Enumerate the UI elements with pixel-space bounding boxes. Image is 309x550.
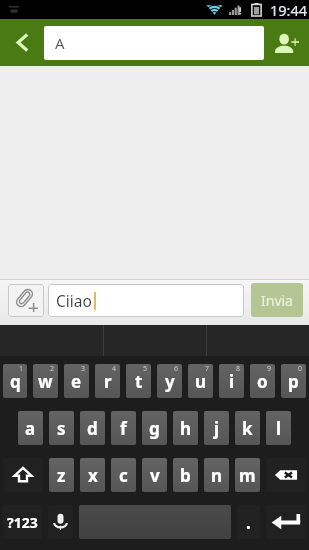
staticText: y — [165, 370, 175, 393]
button[interactable]: p — [281, 364, 306, 398]
staticText: l — [276, 417, 282, 440]
staticText: z — [57, 464, 66, 487]
button[interactable]: Add contact — [264, 19, 309, 66]
staticText: b — [180, 464, 191, 487]
staticText: Invia — [261, 291, 293, 310]
button[interactable]: k — [235, 411, 260, 445]
staticText: t — [135, 370, 143, 393]
button[interactable]: s — [49, 411, 74, 445]
button[interactable]: x — [80, 458, 105, 492]
staticText: 5 — [143, 364, 148, 374]
staticText: m — [239, 464, 256, 487]
staticText: u — [195, 370, 207, 393]
staticText: 2 — [50, 364, 55, 374]
staticText: f — [120, 417, 127, 440]
staticText: 6 — [174, 364, 179, 374]
staticText: d — [87, 417, 98, 440]
button[interactable]: A — [44, 26, 264, 60]
button[interactable]: Invia — [251, 283, 303, 317]
staticText: o — [257, 370, 268, 393]
button[interactable]: . — [237, 505, 260, 539]
button[interactable]: g — [142, 411, 167, 445]
button[interactable]: Backspace — [266, 458, 306, 492]
button[interactable]: f — [111, 411, 136, 445]
staticText: 7 — [205, 364, 210, 374]
button[interactable]: v — [142, 458, 167, 492]
button[interactable]: z — [49, 458, 74, 492]
staticText: 3 — [81, 364, 86, 374]
button[interactable]: h — [173, 411, 198, 445]
button[interactable]: y — [157, 364, 182, 398]
staticText: r — [104, 370, 112, 393]
staticText: . — [246, 511, 251, 534]
button[interactable]: n — [204, 458, 229, 492]
staticText: 19:44 — [270, 0, 308, 19]
button[interactable]: Back — [0, 19, 44, 66]
button[interactable]: Enter — [266, 505, 306, 539]
button[interactable]: b — [173, 458, 198, 492]
button[interactable]: m — [235, 458, 260, 492]
button[interactable]: e — [64, 364, 89, 398]
button[interactable]: q — [3, 364, 27, 398]
staticText: s — [57, 417, 66, 440]
staticText: A — [55, 33, 65, 53]
staticText: 9 — [267, 364, 272, 374]
staticText: g — [149, 417, 160, 440]
button[interactable]: c — [111, 458, 136, 492]
staticText: x — [88, 464, 98, 487]
staticText: w — [38, 370, 53, 393]
staticText: ?123 — [7, 513, 38, 532]
button[interactable]: r — [95, 364, 120, 398]
staticText: v — [150, 464, 160, 487]
staticText: j — [214, 417, 220, 440]
button[interactable]: ?123 — [3, 505, 42, 539]
staticText: a — [25, 417, 36, 440]
staticText: 8 — [236, 364, 241, 374]
button[interactable]: Shift — [3, 458, 43, 492]
staticText: 1 — [19, 364, 24, 374]
button[interactable]: t — [126, 364, 151, 398]
button[interactable]: j — [204, 411, 229, 445]
button[interactable]: w — [33, 364, 58, 398]
button[interactable]: d — [80, 411, 105, 445]
button[interactable]: Voice input — [48, 505, 73, 539]
staticText: 4 — [112, 364, 117, 374]
staticText: e — [71, 370, 82, 393]
staticText: i — [229, 370, 235, 393]
staticText: Ciiao — [56, 290, 92, 311]
staticText: q — [10, 370, 21, 393]
button[interactable]: a — [18, 411, 43, 445]
button[interactable]: Ciiao — [48, 284, 244, 317]
button[interactable]: o — [250, 364, 275, 398]
button[interactable]: Attach — [8, 284, 44, 317]
button[interactable]: l — [266, 411, 291, 445]
button[interactable]: u — [188, 364, 213, 398]
staticText: 0 — [298, 364, 303, 374]
staticText: p — [288, 370, 299, 393]
staticText: k — [242, 417, 253, 440]
button[interactable]: i — [219, 364, 244, 398]
staticText: c — [119, 464, 128, 487]
staticText: n — [211, 464, 223, 487]
staticText: h — [180, 417, 192, 440]
